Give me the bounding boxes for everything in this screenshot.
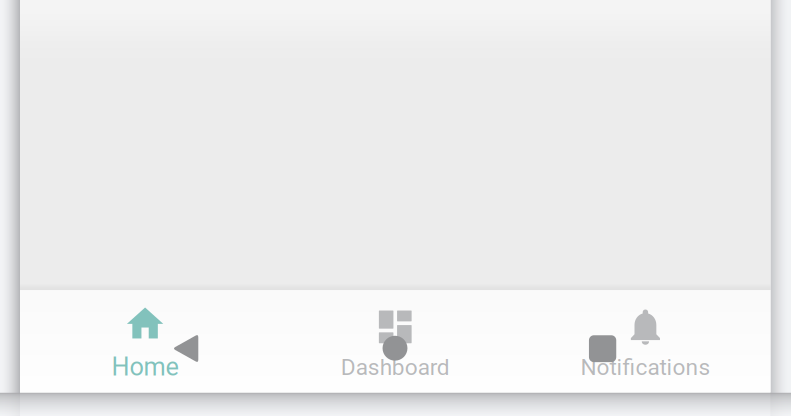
staticText: Home xyxy=(112,352,179,382)
staticText: Dashboard xyxy=(341,354,450,381)
staticText: Notifications xyxy=(580,354,710,381)
button[interactable]: Dashboard xyxy=(270,290,520,393)
button[interactable]: Notifications xyxy=(520,290,770,393)
button[interactable]: Home xyxy=(20,290,270,393)
